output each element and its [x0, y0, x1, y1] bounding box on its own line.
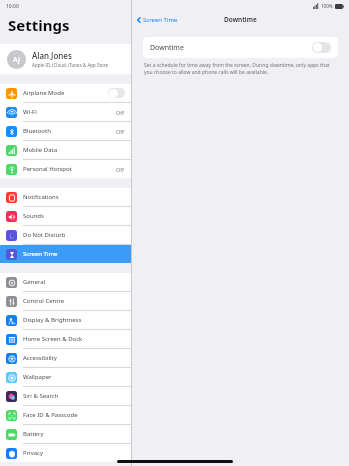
staticText: Display & Brightness [23, 316, 125, 324]
button[interactable]: Home Screen & Dock [0, 330, 131, 348]
other: Downtime toggle [312, 42, 331, 53]
button[interactable]: Wallpaper [0, 368, 131, 386]
button[interactable]: Screen Time [132, 14, 182, 26]
staticText: Apple ID, iCloud, iTunes & App Store [32, 62, 109, 68]
button[interactable]: Bluetooth [0, 122, 131, 140]
staticText: Set a schedule for time away from the sc… [144, 62, 337, 76]
staticText: Battery [23, 430, 125, 438]
staticText: Off [116, 166, 125, 173]
button[interactable]: Downtime [143, 37, 338, 58]
button[interactable]: Screen Time [0, 245, 131, 263]
staticText: Do Not Disturb [23, 231, 125, 239]
button[interactable]: Personal Hotspot [0, 160, 131, 178]
staticText: Accessibility [23, 354, 125, 362]
button[interactable]: Do Not Disturb [0, 226, 131, 244]
button[interactable]: General [0, 273, 131, 291]
button[interactable]: Face ID & Passcode [0, 406, 131, 424]
staticText: 10:00 [6, 3, 19, 10]
button[interactable]: AJ [0, 44, 131, 74]
staticText: AJ [13, 55, 20, 65]
button[interactable]: Battery [0, 425, 131, 443]
staticText: Wallpaper [23, 373, 125, 381]
button[interactable]: Mobile Data [0, 141, 131, 159]
button[interactable]: Airplane Mode toggle [108, 88, 125, 98]
staticText: Screen Time [143, 16, 178, 24]
staticText: Face ID & Passcode [23, 411, 125, 419]
staticText: Off [116, 128, 125, 135]
button[interactable]: Sounds [0, 207, 131, 225]
button[interactable]: Wi-Fi [0, 103, 131, 121]
staticText: Off [116, 109, 125, 116]
staticText: Siri & Search [23, 392, 125, 400]
staticText: Personal Hotspot [23, 165, 116, 173]
staticText: General [23, 278, 125, 286]
staticText: Downtime [150, 43, 312, 53]
staticText: Screen Time [23, 250, 125, 258]
button[interactable]: Display & Brightness [0, 311, 131, 329]
staticText: Downtime [224, 15, 257, 24]
staticText: 100% [321, 3, 333, 9]
staticText: Privacy [23, 449, 125, 457]
staticText: Control Centre [23, 297, 125, 305]
staticText: Airplane Mode [23, 89, 108, 97]
staticText: Notifications [23, 193, 125, 201]
button[interactable]: Control Centre [0, 292, 131, 310]
staticText: Bluetooth [23, 127, 116, 135]
button[interactable]: Airplane Mode [0, 84, 131, 102]
staticText: Home Screen & Dock [23, 335, 125, 343]
staticText: Mobile Data [23, 146, 125, 154]
staticText: Settings [8, 15, 70, 35]
button[interactable]: Accessibility [0, 349, 131, 367]
staticText: Alan Jones [32, 50, 72, 61]
button[interactable]: Siri & Search [0, 387, 131, 405]
staticText: Sounds [23, 212, 125, 220]
button[interactable]: Privacy [0, 444, 131, 462]
staticText: Wi-Fi [23, 108, 116, 116]
button[interactable]: Notifications [0, 188, 131, 206]
